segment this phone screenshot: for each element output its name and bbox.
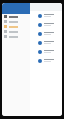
button[interactable]: [30, 20, 62, 29]
button[interactable]: [30, 38, 62, 47]
button[interactable]: [30, 29, 62, 38]
button[interactable]: [2, 29, 30, 34]
button[interactable]: [30, 47, 62, 56]
button[interactable]: [30, 56, 62, 65]
button[interactable]: [2, 19, 30, 24]
button[interactable]: [2, 24, 30, 29]
button[interactable]: [2, 34, 30, 39]
button[interactable]: [2, 14, 30, 19]
button[interactable]: [30, 11, 62, 20]
